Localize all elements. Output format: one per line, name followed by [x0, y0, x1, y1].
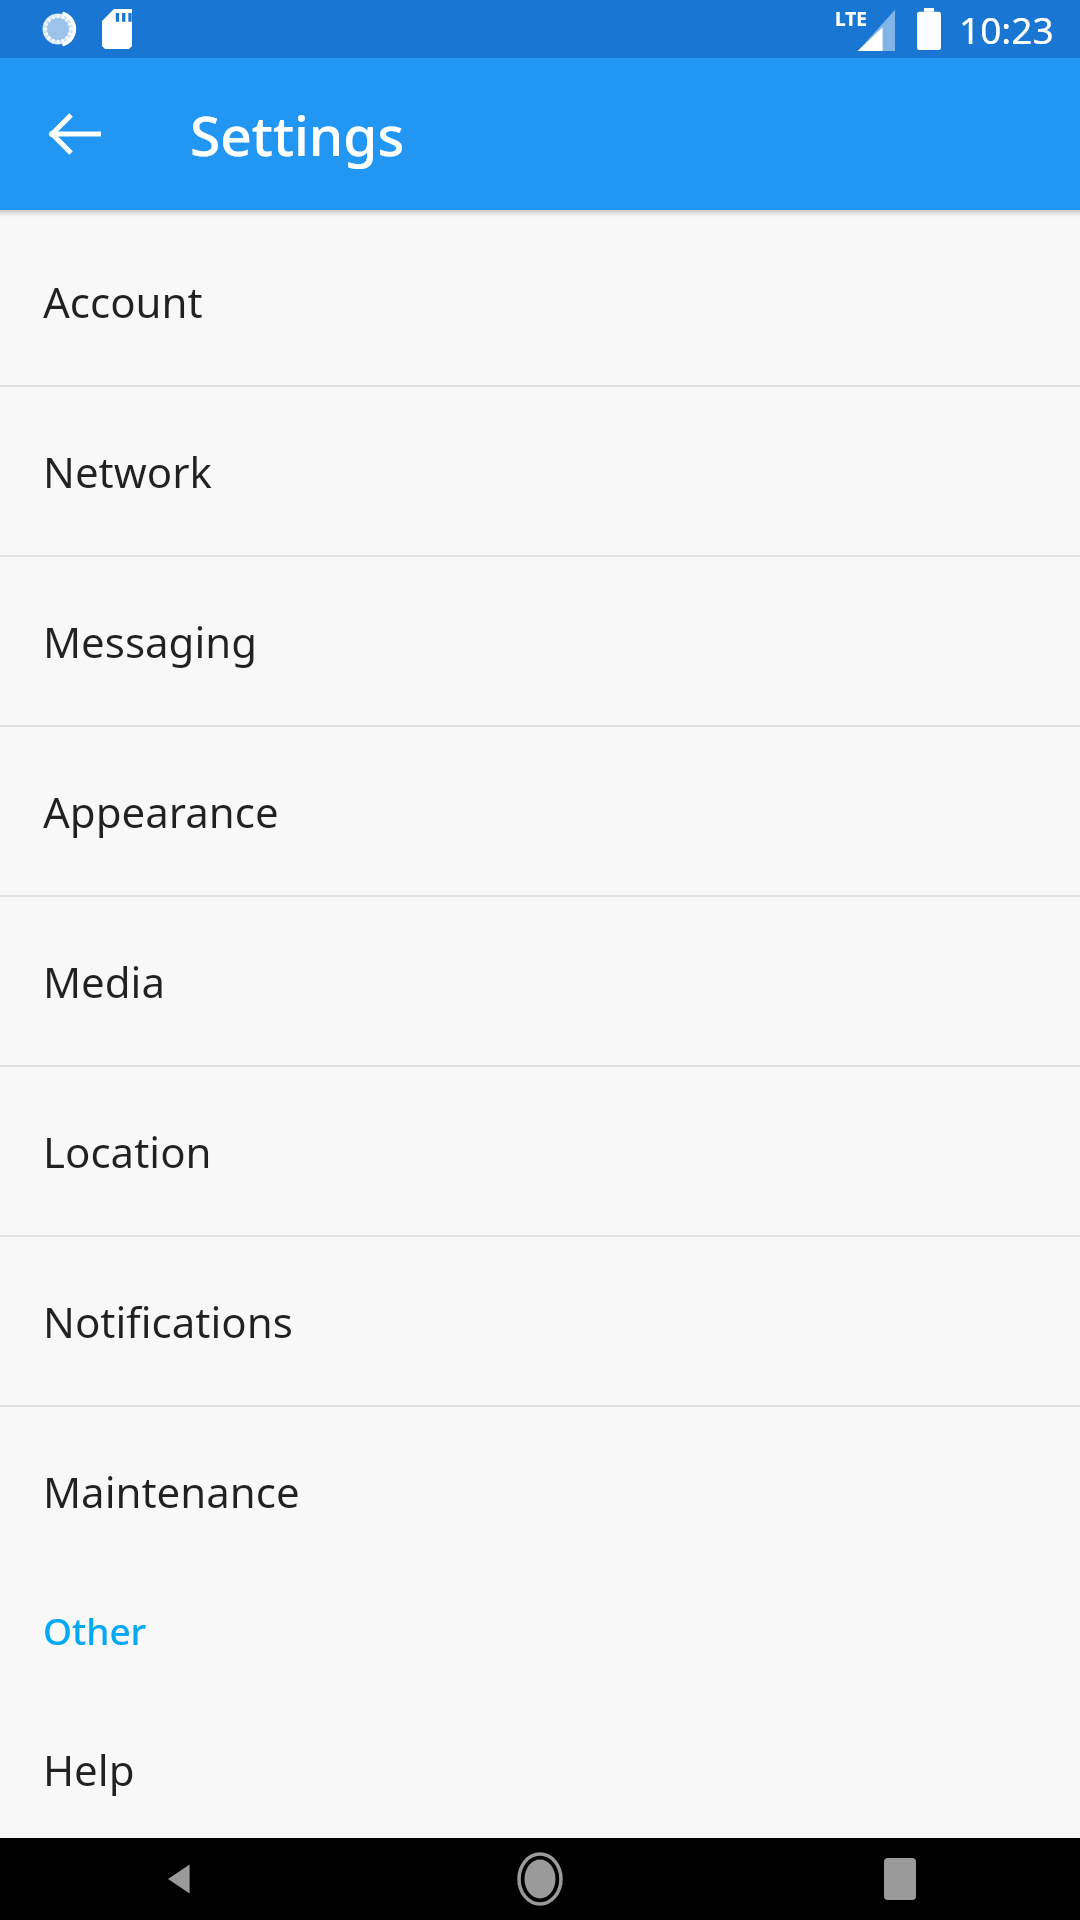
staticText: Settings	[190, 97, 405, 172]
staticText: Network	[43, 443, 212, 500]
button[interactable]: Appearance	[0, 727, 1080, 895]
button[interactable]: Back	[30, 89, 120, 179]
staticText: Media	[43, 953, 166, 1010]
button[interactable]: Maintenance	[0, 1407, 1080, 1575]
staticText: Account	[43, 273, 203, 330]
staticText: 10:23	[959, 4, 1054, 54]
button[interactable]: Location	[0, 1067, 1080, 1235]
staticText: LTE	[835, 6, 867, 32]
staticText: Messaging	[43, 613, 258, 670]
button[interactable]: Media	[0, 897, 1080, 1065]
staticText: Notifications	[43, 1293, 293, 1350]
button[interactable]: Network	[0, 387, 1080, 555]
button[interactable]: Home	[360, 1838, 720, 1920]
button[interactable]: Account	[0, 217, 1080, 385]
staticText: Other	[43, 1605, 147, 1655]
button[interactable]: Back	[0, 1838, 360, 1920]
staticText: Help	[43, 1741, 135, 1798]
staticText: Appearance	[43, 783, 279, 840]
button[interactable]: Notifications	[0, 1237, 1080, 1405]
staticText: Location	[43, 1123, 212, 1180]
button[interactable]: Recent apps	[720, 1838, 1080, 1920]
button[interactable]: Messaging	[0, 557, 1080, 725]
staticText: Maintenance	[43, 1463, 300, 1520]
button[interactable]: Help	[0, 1685, 1080, 1853]
